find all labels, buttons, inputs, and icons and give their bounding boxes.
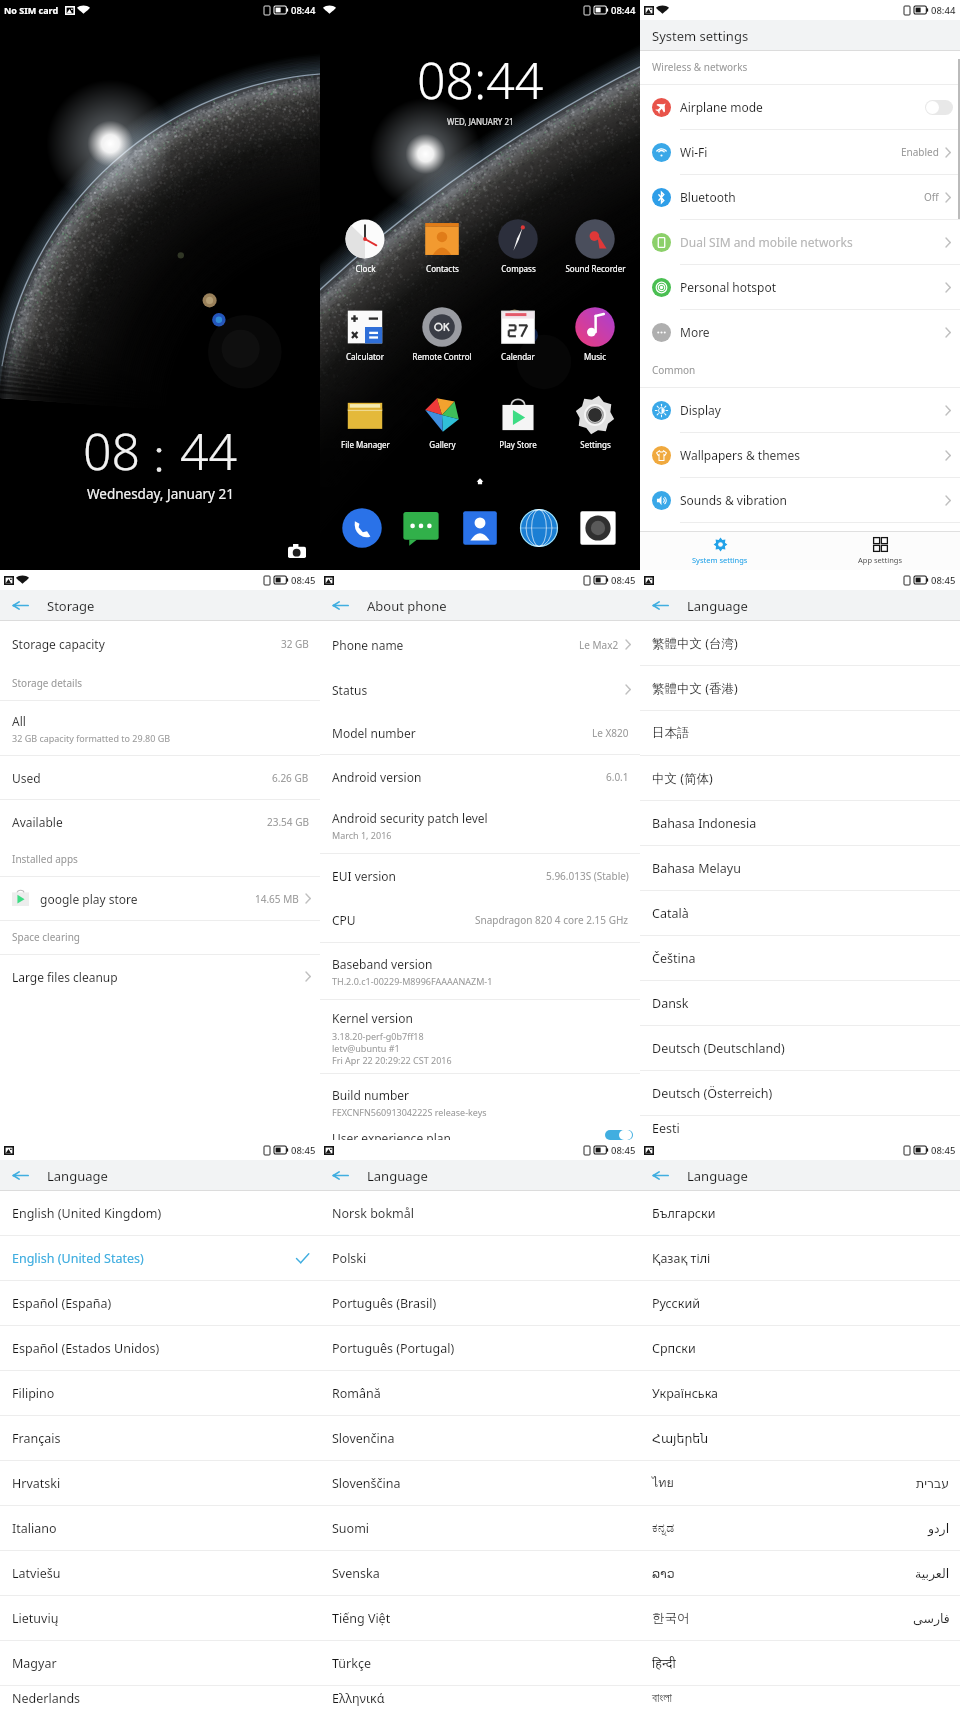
button[interactable]: Contacts [459, 507, 501, 549]
button[interactable]: Android version [320, 755, 640, 798]
button[interactable]: 繁體中文 (台湾) [640, 621, 960, 666]
button[interactable]: हिन्दी [640, 1641, 960, 1686]
button[interactable]: Português (Brasil) [320, 1281, 640, 1326]
button[interactable]: Português (Portugal) [320, 1326, 640, 1371]
button[interactable]: Türkçe [320, 1641, 640, 1686]
button[interactable]: Gallery [405, 394, 479, 450]
button[interactable]: Dansk [640, 981, 960, 1026]
button[interactable]: Back [0, 590, 40, 621]
button[interactable]: Français [0, 1416, 320, 1461]
button[interactable]: Status [320, 668, 640, 711]
button[interactable]: Polski [320, 1236, 640, 1281]
button[interactable]: Latviešu [0, 1551, 320, 1596]
button[interactable]: Română [320, 1371, 640, 1416]
button[interactable]: Build number [320, 1074, 640, 1130]
button[interactable]: Српски [640, 1326, 960, 1371]
button[interactable]: More [640, 310, 960, 354]
button[interactable]: Music [558, 306, 632, 362]
button[interactable]: Nederlands [0, 1686, 320, 1710]
button[interactable]: Ελληνικά [320, 1686, 640, 1710]
button[interactable]: Browser [518, 507, 560, 549]
button[interactable]: Camera [286, 540, 308, 562]
button[interactable]: google play store [0, 877, 320, 921]
button[interactable]: বাংলা [640, 1686, 960, 1710]
button[interactable]: Svenska [320, 1551, 640, 1596]
button[interactable]: All [0, 701, 320, 756]
button[interactable]: CPU [320, 898, 640, 943]
button[interactable]: Қазақ тілі [640, 1236, 960, 1281]
button[interactable]: Lietuvių [0, 1596, 320, 1641]
button[interactable]: Play Store [481, 394, 555, 450]
button[interactable]: Camera [577, 507, 619, 549]
button[interactable]: Display [640, 388, 960, 433]
button[interactable]: Wallpapers & themes [640, 433, 960, 478]
button[interactable]: Back [320, 590, 360, 621]
button[interactable]: Italiano [0, 1506, 320, 1551]
button[interactable]: ไทย [640, 1461, 960, 1506]
button[interactable]: Airplane mode [640, 85, 960, 130]
button[interactable]: Wi-Fi [640, 130, 960, 175]
button[interactable]: Deutsch (Österreich) [640, 1071, 960, 1116]
button[interactable]: Hrvatski [0, 1461, 320, 1506]
button[interactable]: Slovenščina [320, 1461, 640, 1506]
button[interactable]: Messages [400, 507, 442, 549]
button[interactable]: Model number [320, 711, 640, 755]
button[interactable]: Compass [481, 218, 555, 274]
button[interactable]: Հայերեն [640, 1416, 960, 1461]
button[interactable]: Back [320, 1160, 360, 1191]
button[interactable]: ລາວ [640, 1551, 960, 1596]
button[interactable]: Norsk bokmål [320, 1191, 640, 1236]
button[interactable]: Bluetooth [640, 175, 960, 220]
button[interactable]: Personal hotspot [640, 265, 960, 310]
button[interactable]: App settings [800, 532, 960, 570]
button[interactable]: Suomi [320, 1506, 640, 1551]
button[interactable]: Українська [640, 1371, 960, 1416]
button[interactable]: Contacts [405, 218, 479, 274]
button[interactable]: Sounds & vibration [640, 478, 960, 523]
button[interactable]: Bahasa Melayu [640, 846, 960, 891]
button[interactable]: Русский [640, 1281, 960, 1326]
button[interactable]: Phone [341, 507, 383, 549]
button[interactable]: ಕನ್ನಡ [640, 1506, 960, 1551]
button[interactable]: Eesti [640, 1116, 960, 1140]
button[interactable]: Български [640, 1191, 960, 1236]
button[interactable]: Back [640, 590, 680, 621]
button[interactable]: Tiếng Việt [320, 1596, 640, 1641]
button[interactable]: Calculator [328, 306, 402, 362]
button[interactable]: 日本語 [640, 711, 960, 756]
button[interactable]: Sound Recorder [558, 218, 632, 274]
button[interactable]: Back [0, 1160, 40, 1191]
button[interactable]: Used [0, 756, 320, 800]
button[interactable]: Settings [558, 394, 632, 450]
button[interactable]: Baseband version [320, 943, 640, 1000]
button[interactable]: 繁體中文 (香港) [640, 666, 960, 711]
button[interactable]: Remote Control [405, 306, 479, 362]
button[interactable]: File Manager [328, 394, 402, 450]
button[interactable]: Calendar [481, 306, 555, 362]
button[interactable]: Large files cleanup [0, 955, 320, 998]
button[interactable]: EUI version [320, 854, 640, 898]
button[interactable]: Kernel version [320, 1000, 640, 1074]
button[interactable]: User experience plan [332, 1130, 633, 1140]
button[interactable]: Slovenčina [320, 1416, 640, 1461]
button[interactable]: Clock [328, 218, 402, 274]
button[interactable]: English (United Kingdom) [0, 1191, 320, 1236]
button[interactable]: Phone name [320, 621, 640, 668]
button[interactable]: Storage capacity [0, 621, 320, 667]
button[interactable]: Dual SIM and mobile networks [640, 220, 960, 265]
button[interactable]: Bahasa Indonesia [640, 801, 960, 846]
button[interactable]: 中文 (简体) [640, 756, 960, 801]
button[interactable]: Català [640, 891, 960, 936]
button[interactable]: Magyar [0, 1641, 320, 1686]
button[interactable]: Android security patch level [320, 798, 640, 854]
button[interactable]: Deutsch (Deutschland) [640, 1026, 960, 1071]
button[interactable]: Available [0, 800, 320, 843]
button[interactable]: Filipino [0, 1371, 320, 1416]
button[interactable]: 한국어 [640, 1596, 960, 1641]
button[interactable]: English (United States) [0, 1236, 320, 1281]
button[interactable]: Toggle Airplane mode [925, 100, 953, 115]
button[interactable]: Español (Estados Unidos) [0, 1326, 320, 1371]
button[interactable]: Back [640, 1160, 680, 1191]
button[interactable]: Čeština [640, 936, 960, 981]
button[interactable]: System settings [640, 532, 800, 570]
